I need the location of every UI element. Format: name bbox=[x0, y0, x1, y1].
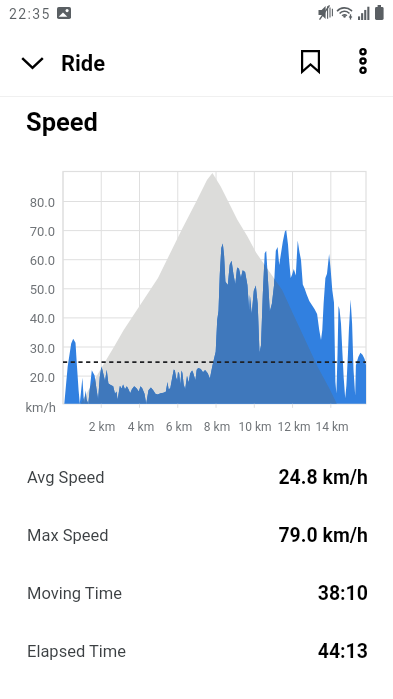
staticText: 38:10 bbox=[130, 582, 368, 605]
staticText: Elapsed Time bbox=[27, 642, 127, 661]
staticText: 40.0 bbox=[0, 311, 55, 326]
staticText: 6 km bbox=[149, 420, 209, 434]
button[interactable]: Moving Time bbox=[0, 564, 393, 622]
staticText: 10 km bbox=[225, 420, 285, 434]
staticText: Avg Speed bbox=[27, 468, 105, 487]
button[interactable]: Elapsed Time bbox=[0, 622, 393, 680]
staticText: 8 km bbox=[187, 420, 247, 434]
staticText: 24.8 km/h bbox=[113, 466, 368, 489]
staticText: 70.0 bbox=[0, 224, 55, 239]
button[interactable]: Avg Speed bbox=[0, 448, 393, 506]
staticText: 30.0 bbox=[0, 341, 55, 356]
staticText: 50.0 bbox=[0, 282, 55, 297]
staticText: 2 km bbox=[72, 420, 132, 434]
staticText: Speed bbox=[26, 107, 98, 137]
button[interactable]: Max Speed bbox=[0, 506, 393, 564]
staticText: km/h bbox=[0, 400, 56, 415]
staticText: 4 km bbox=[111, 420, 171, 434]
button[interactable]: More options bbox=[339, 37, 387, 85]
staticText: 44:13 bbox=[135, 640, 368, 663]
staticText: 80.0 bbox=[0, 195, 55, 210]
staticText: 14 km bbox=[302, 420, 362, 434]
staticText: 12 km bbox=[264, 420, 324, 434]
staticText: Ride bbox=[61, 51, 106, 77]
staticText: 79.0 km/h bbox=[117, 524, 368, 547]
staticText: 60.0 bbox=[0, 253, 55, 268]
staticText: 22:35 bbox=[9, 6, 51, 22]
staticText: Moving Time bbox=[27, 584, 122, 603]
staticText: 20.0 bbox=[0, 370, 55, 385]
staticText: Max Speed bbox=[27, 526, 109, 545]
button[interactable]: Bookmark bbox=[286, 37, 334, 85]
button[interactable]: Collapse bbox=[8, 39, 56, 87]
